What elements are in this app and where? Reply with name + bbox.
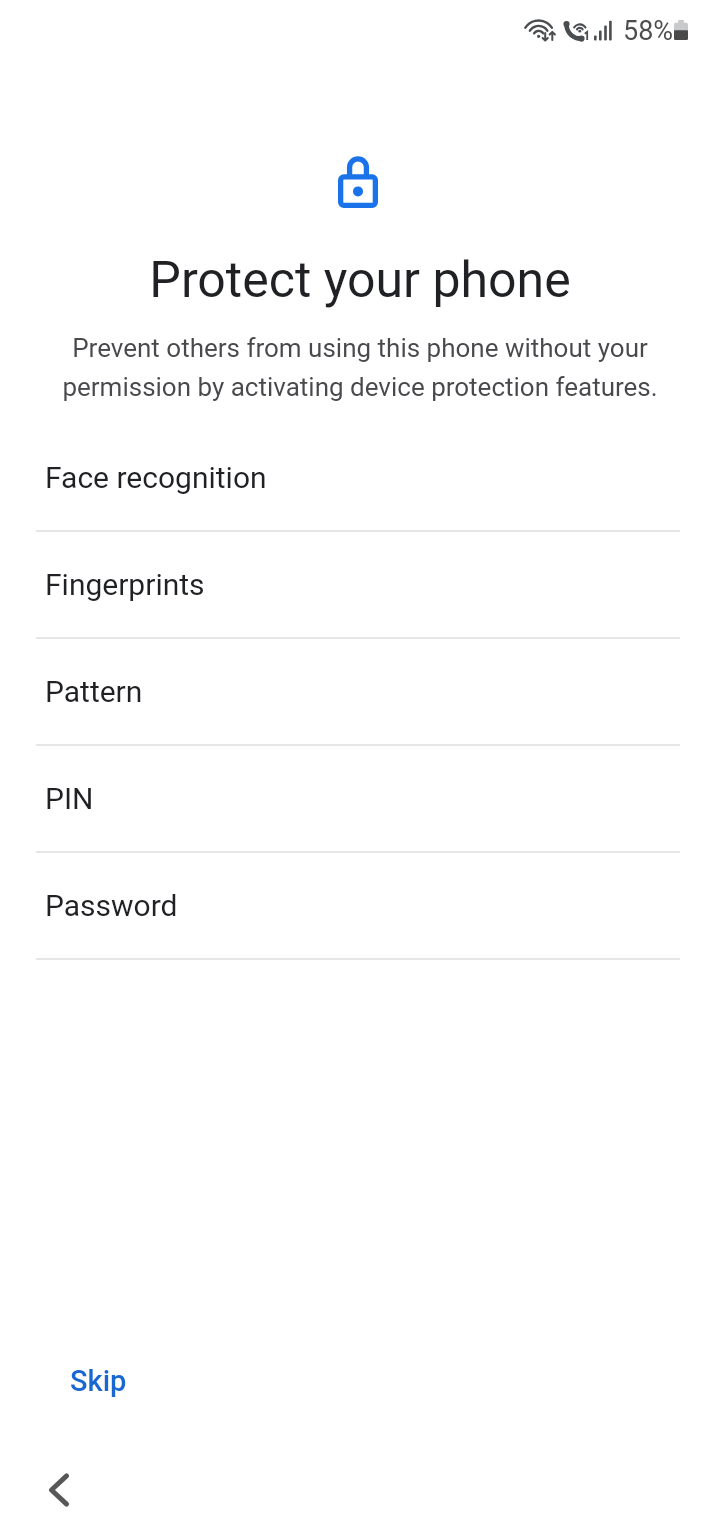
staticText: 58% (623, 15, 674, 47)
button[interactable]: Back (29, 1460, 89, 1520)
staticText: Face recognition (45, 460, 267, 495)
staticText: PIN (45, 781, 94, 816)
button[interactable]: Fingerprints (36, 532, 680, 639)
staticText: Password (45, 888, 178, 923)
staticText: Skip (70, 1364, 127, 1398)
button[interactable]: Skip (46, 1346, 151, 1416)
staticText: Protect your phone (2, 251, 716, 310)
staticText: Fingerprints (45, 567, 205, 602)
button[interactable]: PIN (36, 746, 680, 853)
button[interactable]: Face recognition (36, 425, 680, 532)
staticText: Pattern (45, 674, 143, 709)
staticText: Prevent others from using this phone wit… (32, 333, 688, 402)
button[interactable]: Password (36, 853, 680, 960)
button[interactable]: Pattern (36, 639, 680, 746)
